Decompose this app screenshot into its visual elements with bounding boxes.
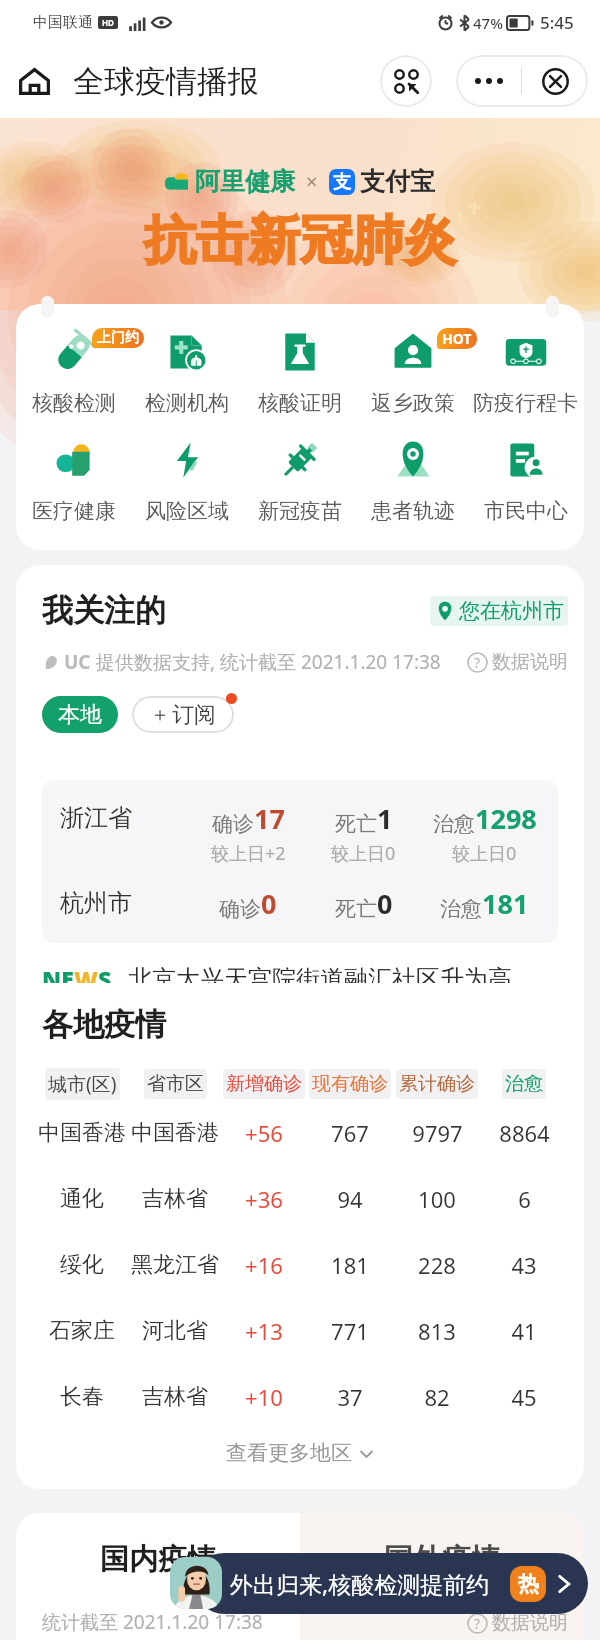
staticText: 100 [418,1184,456,1214]
button[interactable]: 通化 [36,1166,584,1232]
staticText: 0 [261,885,277,922]
button[interactable]: 本地 [42,696,118,733]
staticText: 41 [511,1316,537,1346]
staticText: 核酸证明 [258,390,342,416]
staticText: 治愈 [433,811,475,837]
staticText: 全球疫情播报 [73,62,259,101]
staticText: 现有确诊 [312,1072,388,1096]
staticText: 数据说明 [492,650,568,674]
button[interactable]: HOT [356,326,469,416]
staticText: 较上日0 [331,841,396,866]
button[interactable]: 上门约 [18,326,130,416]
staticText: 较上日0 [452,841,517,866]
staticText: 43 [511,1250,537,1280]
button[interactable]: 国内疫情 [16,1513,300,1640]
button[interactable]: 患者轨迹 [356,434,469,524]
staticText: +13 [245,1316,283,1346]
staticText: 各地疫情 [42,1005,166,1044]
staticText: 死亡 [335,811,377,837]
button[interactable]: 医疗健康 [18,434,130,524]
staticText: 228 [418,1250,456,1280]
staticText: 确诊 [219,896,261,922]
staticText: 771 [331,1316,369,1346]
staticText: 17 [254,800,285,837]
staticText: 外出归来,核酸检测提前约 [230,1568,490,1599]
button[interactable]: ? [467,1611,568,1635]
button[interactable]: 新冠疫苗 [243,434,356,524]
staticText: 死亡 [335,896,377,922]
staticText: 阿里健康 [195,166,295,197]
staticText: 长春 [60,1383,104,1411]
button[interactable]: Close [522,55,588,107]
button[interactable]: 外出归来,核酸检测提前约 [230,1553,576,1614]
staticText: +10 [245,1382,283,1412]
staticText: 1 [377,800,393,837]
staticText: 新冠疫苗 [258,498,342,524]
button[interactable]: 市民中心 [469,434,582,524]
button[interactable]: NE [42,963,568,994]
staticText: 中国联通 [33,13,93,32]
staticText: 检测机构 [145,390,229,416]
staticText: × [306,168,318,195]
button[interactable]: More options [456,55,521,107]
staticText: 医疗健康 [32,498,116,524]
staticText: 我关注的 [42,591,166,630]
staticText: 风险区域 [145,498,229,524]
button[interactable]: 国外疫情 [300,1513,584,1640]
button[interactable]: 查看更多地区 [16,1440,584,1466]
staticText: 返乡政策 [371,390,455,416]
staticText: 吉林省 [142,1383,208,1411]
staticText: 您在杭州市 [459,598,564,624]
button[interactable]: 核酸证明 [243,326,356,416]
staticText: HOT [442,329,472,348]
staticText: 1298 [475,800,537,837]
staticText: NE [42,963,74,994]
staticText: 通化 [60,1185,104,1213]
staticText: 上门约 [97,329,139,347]
staticText: 国外疫情 [384,1541,500,1578]
staticText: 94 [337,1184,363,1214]
staticText: 治愈 [440,896,482,922]
button[interactable]: 长春 [36,1364,584,1430]
staticText: 热 [518,1571,539,1597]
staticText: 中国香港 [38,1119,126,1147]
staticText: 5:45 [540,11,574,34]
button[interactable]: ＋ [150,696,216,733]
button[interactable]: 风险区域 [130,434,243,524]
staticText: 患者轨迹 [371,498,455,524]
button[interactable]: 石家庄 [36,1298,584,1364]
staticText: ＋ [150,702,170,727]
button[interactable]: 防疫行程卡 [469,326,582,416]
staticText: +36 [245,1184,283,1214]
staticText: 确诊 [212,811,254,837]
button[interactable]: 绥化 [36,1232,584,1298]
staticText: 核酸检测 [32,390,116,416]
staticText: 767 [331,1118,369,1148]
staticText: 抗击新冠肺炎 [144,208,456,274]
staticText: 市民中心 [484,498,568,524]
staticText: 数据说明 [492,1611,568,1635]
staticText: 防疫行程卡 [473,390,578,416]
staticText: 省市区 [147,1072,204,1096]
staticText: ? [474,653,481,672]
button[interactable]: Mini program [380,55,432,107]
staticText: 支 [333,171,351,194]
staticText: 城市(区) [48,1071,117,1097]
button[interactable]: Home [18,62,259,101]
staticText: 提供数据支持, 统计截至 2021.1.20 17:38 [96,649,441,675]
staticText: 813 [418,1316,456,1346]
button[interactable]: 您在杭州市 [434,598,564,624]
staticText: +16 [245,1250,283,1280]
staticText: 浙江省 [60,803,190,833]
staticText: 181 [482,885,529,922]
button[interactable]: 中国香港 [36,1100,584,1166]
staticText: 6 [518,1184,531,1214]
staticText: 累计确诊 [399,1072,475,1096]
staticText: 绥化 [60,1251,104,1279]
staticText: 较上日+2 [211,841,286,866]
staticText: 统计截至 2021.1.20 17:38 [42,1609,263,1635]
button[interactable]: ? [467,650,568,674]
staticText: UC [64,649,91,675]
button[interactable]: 检测机构 [130,326,243,416]
staticText: HD [102,17,114,28]
